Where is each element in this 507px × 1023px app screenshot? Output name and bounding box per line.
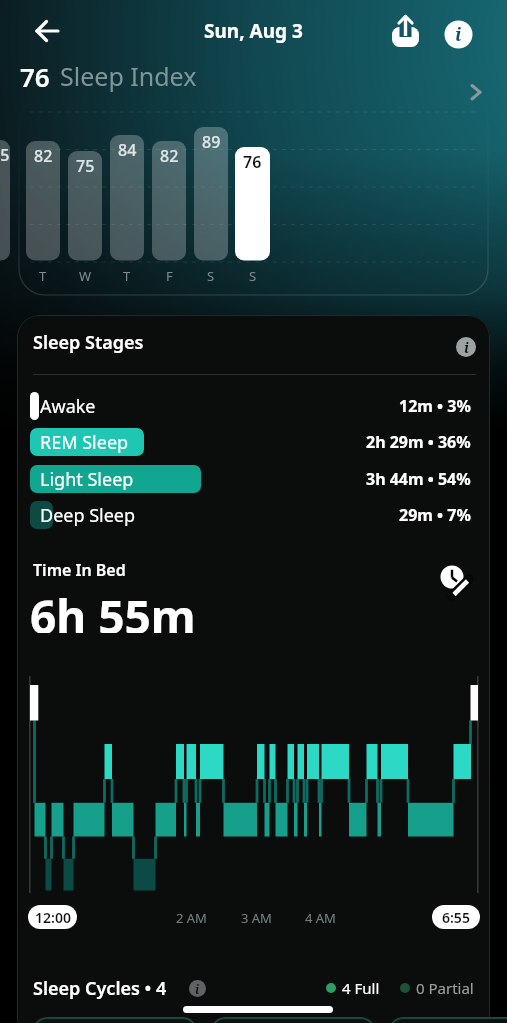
staticText: T bbox=[123, 267, 131, 285]
staticText: 84 bbox=[118, 139, 137, 161]
button[interactable] bbox=[33, 1017, 197, 1023]
staticText: 29m • 7% bbox=[399, 504, 471, 526]
staticText: 3h 44m • 54% bbox=[366, 468, 471, 490]
staticText: 82 bbox=[34, 145, 53, 167]
staticText: 76 bbox=[243, 151, 262, 173]
button[interactable]: T bbox=[26, 266, 60, 286]
button[interactable] bbox=[211, 1017, 375, 1023]
staticText: i bbox=[464, 338, 469, 357]
staticText: 2h 29m • 36% bbox=[366, 431, 471, 453]
staticText: 75 bbox=[0, 144, 10, 166]
button[interactable]: T bbox=[110, 266, 144, 286]
staticText: Light Sleep bbox=[40, 467, 134, 492]
staticText: REM Sleep bbox=[40, 430, 129, 455]
button[interactable]: i bbox=[189, 980, 206, 997]
staticText: 3 AM bbox=[241, 909, 272, 927]
staticText: 76 bbox=[20, 59, 50, 94]
button[interactable]: 6:55 bbox=[432, 905, 480, 929]
staticText: 2 AM bbox=[176, 909, 207, 927]
button[interactable] bbox=[438, 563, 474, 599]
button[interactable] bbox=[30, 392, 39, 420]
button[interactable]: i bbox=[456, 337, 476, 357]
staticText: i bbox=[455, 22, 462, 47]
staticText: F bbox=[166, 267, 173, 285]
staticText: i bbox=[195, 981, 200, 997]
button[interactable]: F bbox=[152, 266, 186, 286]
staticText: 89 bbox=[202, 131, 221, 153]
button[interactable]: 12:00 bbox=[28, 905, 77, 929]
staticText: 12m • 3% bbox=[399, 395, 471, 417]
staticText: Deep Sleep bbox=[40, 503, 136, 528]
staticText: 4 AM bbox=[305, 909, 336, 927]
button[interactable]: S bbox=[236, 266, 270, 286]
staticText: 6h 55m bbox=[30, 585, 196, 633]
button[interactable] bbox=[389, 1017, 507, 1023]
staticText: S bbox=[207, 267, 215, 285]
staticText: S bbox=[249, 267, 257, 285]
staticText: 12:00 bbox=[35, 908, 71, 927]
staticText: Time In Bed bbox=[33, 559, 126, 581]
button[interactable] bbox=[30, 465, 201, 493]
button[interactable] bbox=[30, 501, 53, 529]
button[interactable]: W bbox=[68, 266, 102, 286]
button[interactable]: S bbox=[194, 266, 228, 286]
staticText: Awake bbox=[40, 394, 96, 419]
staticText: 4 Full bbox=[342, 978, 380, 998]
staticText: 6:55 bbox=[442, 908, 470, 927]
staticText: W bbox=[79, 267, 92, 285]
staticText: 0 Partial bbox=[416, 978, 474, 998]
staticText: Sleep Stages bbox=[33, 330, 144, 354]
staticText: T bbox=[39, 267, 47, 285]
button[interactable]: 76 bbox=[0, 56, 507, 96]
staticText: 82 bbox=[160, 145, 179, 167]
button[interactable] bbox=[30, 14, 64, 48]
staticText: Sleep Index bbox=[60, 59, 197, 93]
button[interactable]: i bbox=[444, 20, 473, 49]
staticText: Sun, Aug 3 bbox=[204, 18, 303, 44]
button[interactable] bbox=[30, 428, 144, 456]
button[interactable] bbox=[388, 12, 424, 50]
staticText: 75 bbox=[76, 155, 95, 177]
staticText: Sleep Cycles • 4 bbox=[33, 976, 167, 1000]
